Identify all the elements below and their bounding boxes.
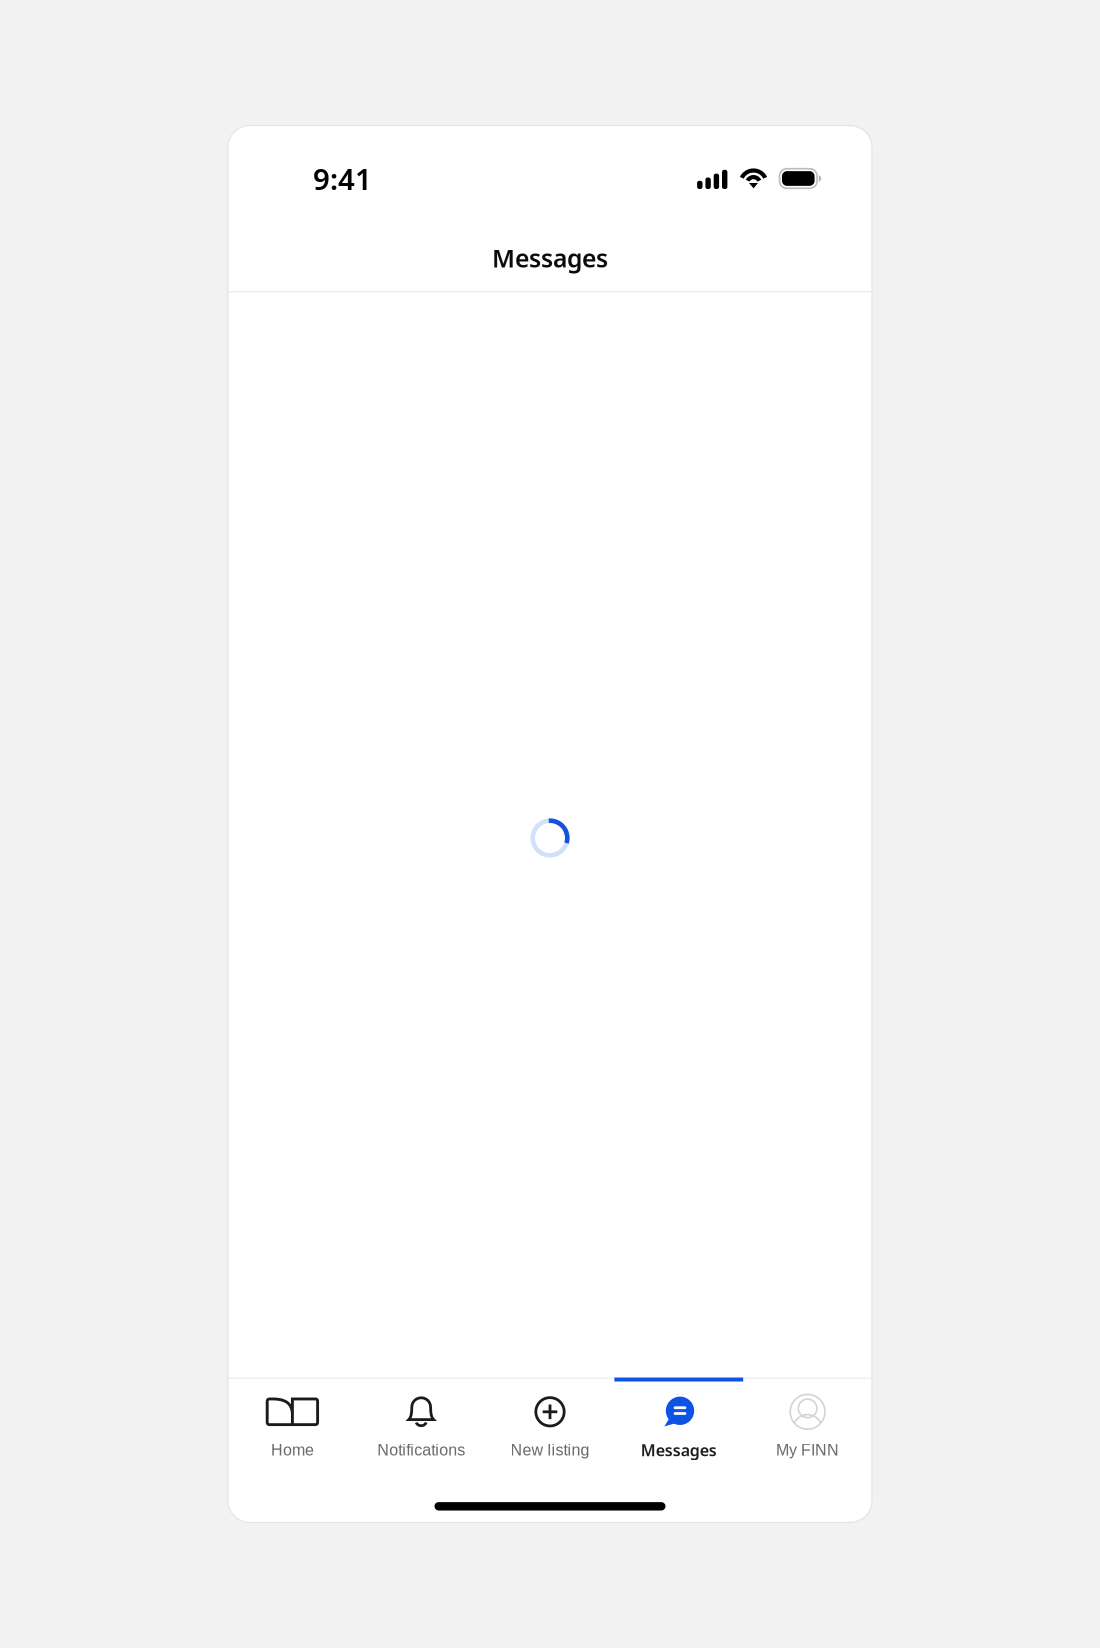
button[interactable]: Home bbox=[228, 1377, 357, 1473]
staticText: Messages bbox=[492, 241, 608, 275]
button[interactable]: Messages bbox=[614, 1377, 743, 1473]
button[interactable]: My FINN bbox=[743, 1377, 872, 1473]
staticText: Home bbox=[271, 1441, 314, 1459]
staticText: New listing bbox=[510, 1441, 589, 1459]
button[interactable]: Notifications bbox=[357, 1377, 486, 1473]
staticText: Messages bbox=[641, 1439, 717, 1461]
button[interactable]: New listing bbox=[486, 1377, 614, 1473]
staticText: Notifications bbox=[377, 1441, 465, 1459]
staticText: My FINN bbox=[776, 1441, 839, 1459]
staticText: 9:41 bbox=[313, 158, 372, 198]
